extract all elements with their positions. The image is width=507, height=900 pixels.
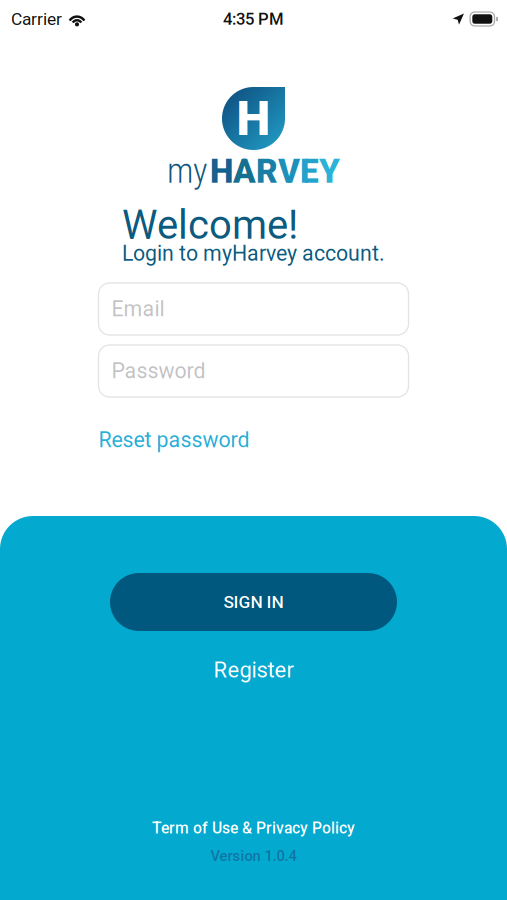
button[interactable]: Reset password (98, 425, 408, 455)
staticText: Reset password (98, 427, 249, 452)
button[interactable]: Term of Use & Privacy Policy (152, 818, 355, 838)
staticText: Term of Use & Privacy Policy (152, 819, 355, 837)
staticText: 4:35 PM (223, 9, 284, 29)
staticText: Register (213, 657, 293, 683)
staticText: Email (111, 296, 164, 321)
staticText: E (300, 152, 319, 191)
staticText: H (210, 152, 233, 191)
staticText: Password (111, 358, 205, 383)
staticText: Carrier (11, 9, 62, 29)
staticText: Version 1.0.4 (210, 847, 296, 865)
button[interactable]: Register (110, 653, 397, 687)
button[interactable]: SIGN IN (110, 573, 397, 631)
staticText: SIGN IN (223, 592, 283, 612)
staticText: A (233, 152, 256, 191)
staticText: Y (319, 152, 340, 191)
staticText: Welcome! (122, 202, 298, 248)
staticText: H (236, 90, 270, 147)
staticText: V (278, 152, 300, 191)
staticText: R (256, 152, 278, 191)
staticText: my (167, 151, 208, 191)
staticText: Login to myHarvey account. (122, 241, 385, 266)
